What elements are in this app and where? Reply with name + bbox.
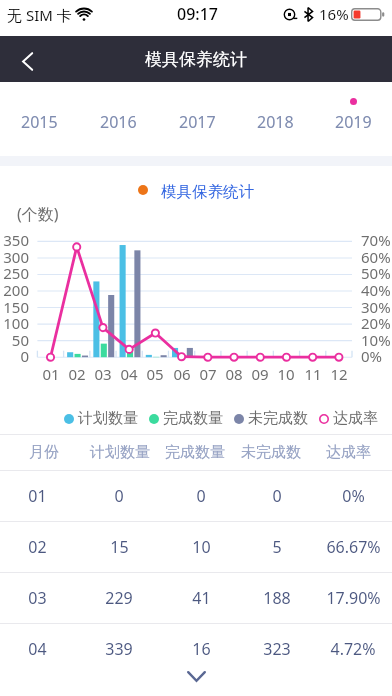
button[interactable]: 01 [0,471,392,521]
button[interactable]: 02 [0,522,392,572]
staticText: 未完成数 [241,443,301,462]
staticText: 50 [0,330,29,350]
button[interactable]: 计划数量 [64,409,138,428]
button[interactable]: 2015 [0,82,79,156]
staticText: 模具保养统计 [145,49,247,70]
button[interactable]: 2018 [236,82,314,156]
staticText: 04 [116,364,142,384]
staticText: 无 SIM 卡 [7,5,72,25]
staticText: 300 [0,247,29,267]
staticText: 70% [361,230,391,250]
staticText: 50% [361,263,391,283]
staticText: 模具保养统计 [161,182,254,202]
staticText: 0 [114,485,124,507]
staticText: 0 [196,485,206,507]
staticText: 08 [221,364,247,384]
staticText: (个数) [17,203,59,225]
staticText: 2017 [179,111,216,133]
staticText: 60% [361,247,391,267]
staticText: 11 [300,364,326,384]
staticText: 15 [110,536,129,558]
staticText: 02 [28,536,47,558]
staticText: 66.67% [326,536,381,558]
staticText: 01 [28,485,47,507]
staticText: 0% [361,346,383,366]
staticText: 04 [28,638,47,660]
button[interactable]: Expand more [0,674,392,696]
staticText: 完成数量 [163,409,223,428]
staticText: 达成率 [326,443,371,462]
button[interactable]: 04 [0,624,392,674]
staticText: 0 [272,485,282,507]
button[interactable]: 未完成数 [234,409,308,428]
staticText: 05 [142,364,168,384]
staticText: 16 [192,638,211,660]
staticText: 41 [192,587,211,609]
staticText: 10% [361,330,391,350]
staticText: 09:17 [177,3,218,25]
staticText: 200 [0,280,29,300]
staticText: 达成率 [333,409,378,428]
staticText: 2016 [100,111,137,133]
staticText: 0 [0,346,29,366]
staticText: 计划数量 [90,443,150,462]
staticText: 2015 [21,111,58,133]
staticText: 月份 [29,443,59,462]
button[interactable]: 2017 [158,82,236,156]
staticText: 完成数量 [165,443,225,462]
staticText: 01 [38,364,64,384]
staticText: 17.90% [326,587,381,609]
staticText: 339 [105,638,133,660]
staticText: 323 [263,638,291,660]
button[interactable]: 达成率 [319,409,378,428]
button[interactable]: 完成数量 [149,409,223,428]
staticText: 4.72% [330,638,376,660]
button[interactable]: 2019 [314,82,392,156]
staticText: 350 [0,230,29,250]
staticText: 03 [28,587,47,609]
staticText: 188 [263,587,291,609]
staticText: 10 [273,364,299,384]
button[interactable]: 03 [0,573,392,623]
staticText: 未完成数 [248,409,308,428]
staticText: 250 [0,263,29,283]
staticText: 02 [64,364,90,384]
staticText: 229 [105,587,133,609]
staticText: 06 [169,364,195,384]
staticText: 计划数量 [78,409,138,428]
button[interactable]: Back [0,36,54,82]
staticText: 100 [0,313,29,333]
staticText: 07 [195,364,221,384]
staticText: 2018 [257,111,294,133]
staticText: 03 [90,364,116,384]
staticText: 2019 [335,111,372,133]
staticText: 09 [247,364,273,384]
staticText: 16% [319,4,349,24]
staticText: 30% [361,297,391,317]
button[interactable]: 2016 [79,82,158,156]
staticText: 0% [342,485,365,507]
staticText: 5 [272,536,282,558]
staticText: 40% [361,280,391,300]
staticText: 12 [326,364,352,384]
staticText: 20% [361,313,391,333]
staticText: 150 [0,297,29,317]
staticText: 10 [192,536,211,558]
